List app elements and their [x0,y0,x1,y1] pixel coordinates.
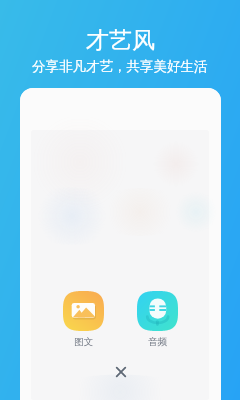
button[interactable]: 图文 [63,291,104,348]
staticText: 音频 [148,336,167,348]
button[interactable]: Close [108,359,134,385]
button[interactable]: 音频 [137,291,178,348]
staticText: 图文 [74,336,93,348]
staticText: 分享非凡才艺，共享美好生活 [32,58,208,75]
staticText: 才艺风 [86,26,155,55]
